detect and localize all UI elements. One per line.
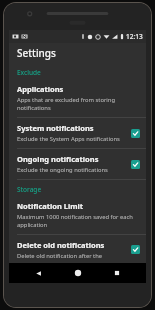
button[interactable]: Toggle Ongoing notifications xyxy=(131,160,140,169)
button[interactable]: Applications xyxy=(9,79,146,117)
button[interactable]: Notification Limit xyxy=(9,196,146,234)
staticText: Storage xyxy=(17,185,42,194)
staticText: Ongoing notifications xyxy=(17,154,99,164)
staticText: Exclude the ongoing notifications xyxy=(17,166,108,174)
button[interactable]: System notifications xyxy=(9,118,146,148)
staticText: Maximum 1000 notification saved for each… xyxy=(17,213,140,229)
button[interactable]: Back xyxy=(27,263,49,283)
button[interactable]: Delete old notifications xyxy=(9,235,146,263)
staticText: Applications xyxy=(17,84,64,94)
staticText: Exclude the System Apps notifications xyxy=(17,135,120,143)
staticText: Exclude xyxy=(17,68,41,77)
button[interactable]: Toggle Delete old notifications xyxy=(131,245,140,254)
staticText: Settings xyxy=(17,46,56,60)
button[interactable]: Recent apps xyxy=(106,263,128,283)
staticText: 12:13 xyxy=(126,32,143,41)
button[interactable]: Toggle System notifications xyxy=(131,129,140,138)
button[interactable]: Ongoing notifications xyxy=(9,149,146,179)
button[interactable]: Home xyxy=(67,263,89,283)
staticText: Apps that are excluded from storing noti… xyxy=(17,96,140,112)
staticText: Notification Limit xyxy=(17,201,84,211)
staticText: Delete old notifications xyxy=(17,240,105,250)
staticText: System notifications xyxy=(17,123,94,133)
staticText: Delete old notification after the specif… xyxy=(17,252,127,258)
